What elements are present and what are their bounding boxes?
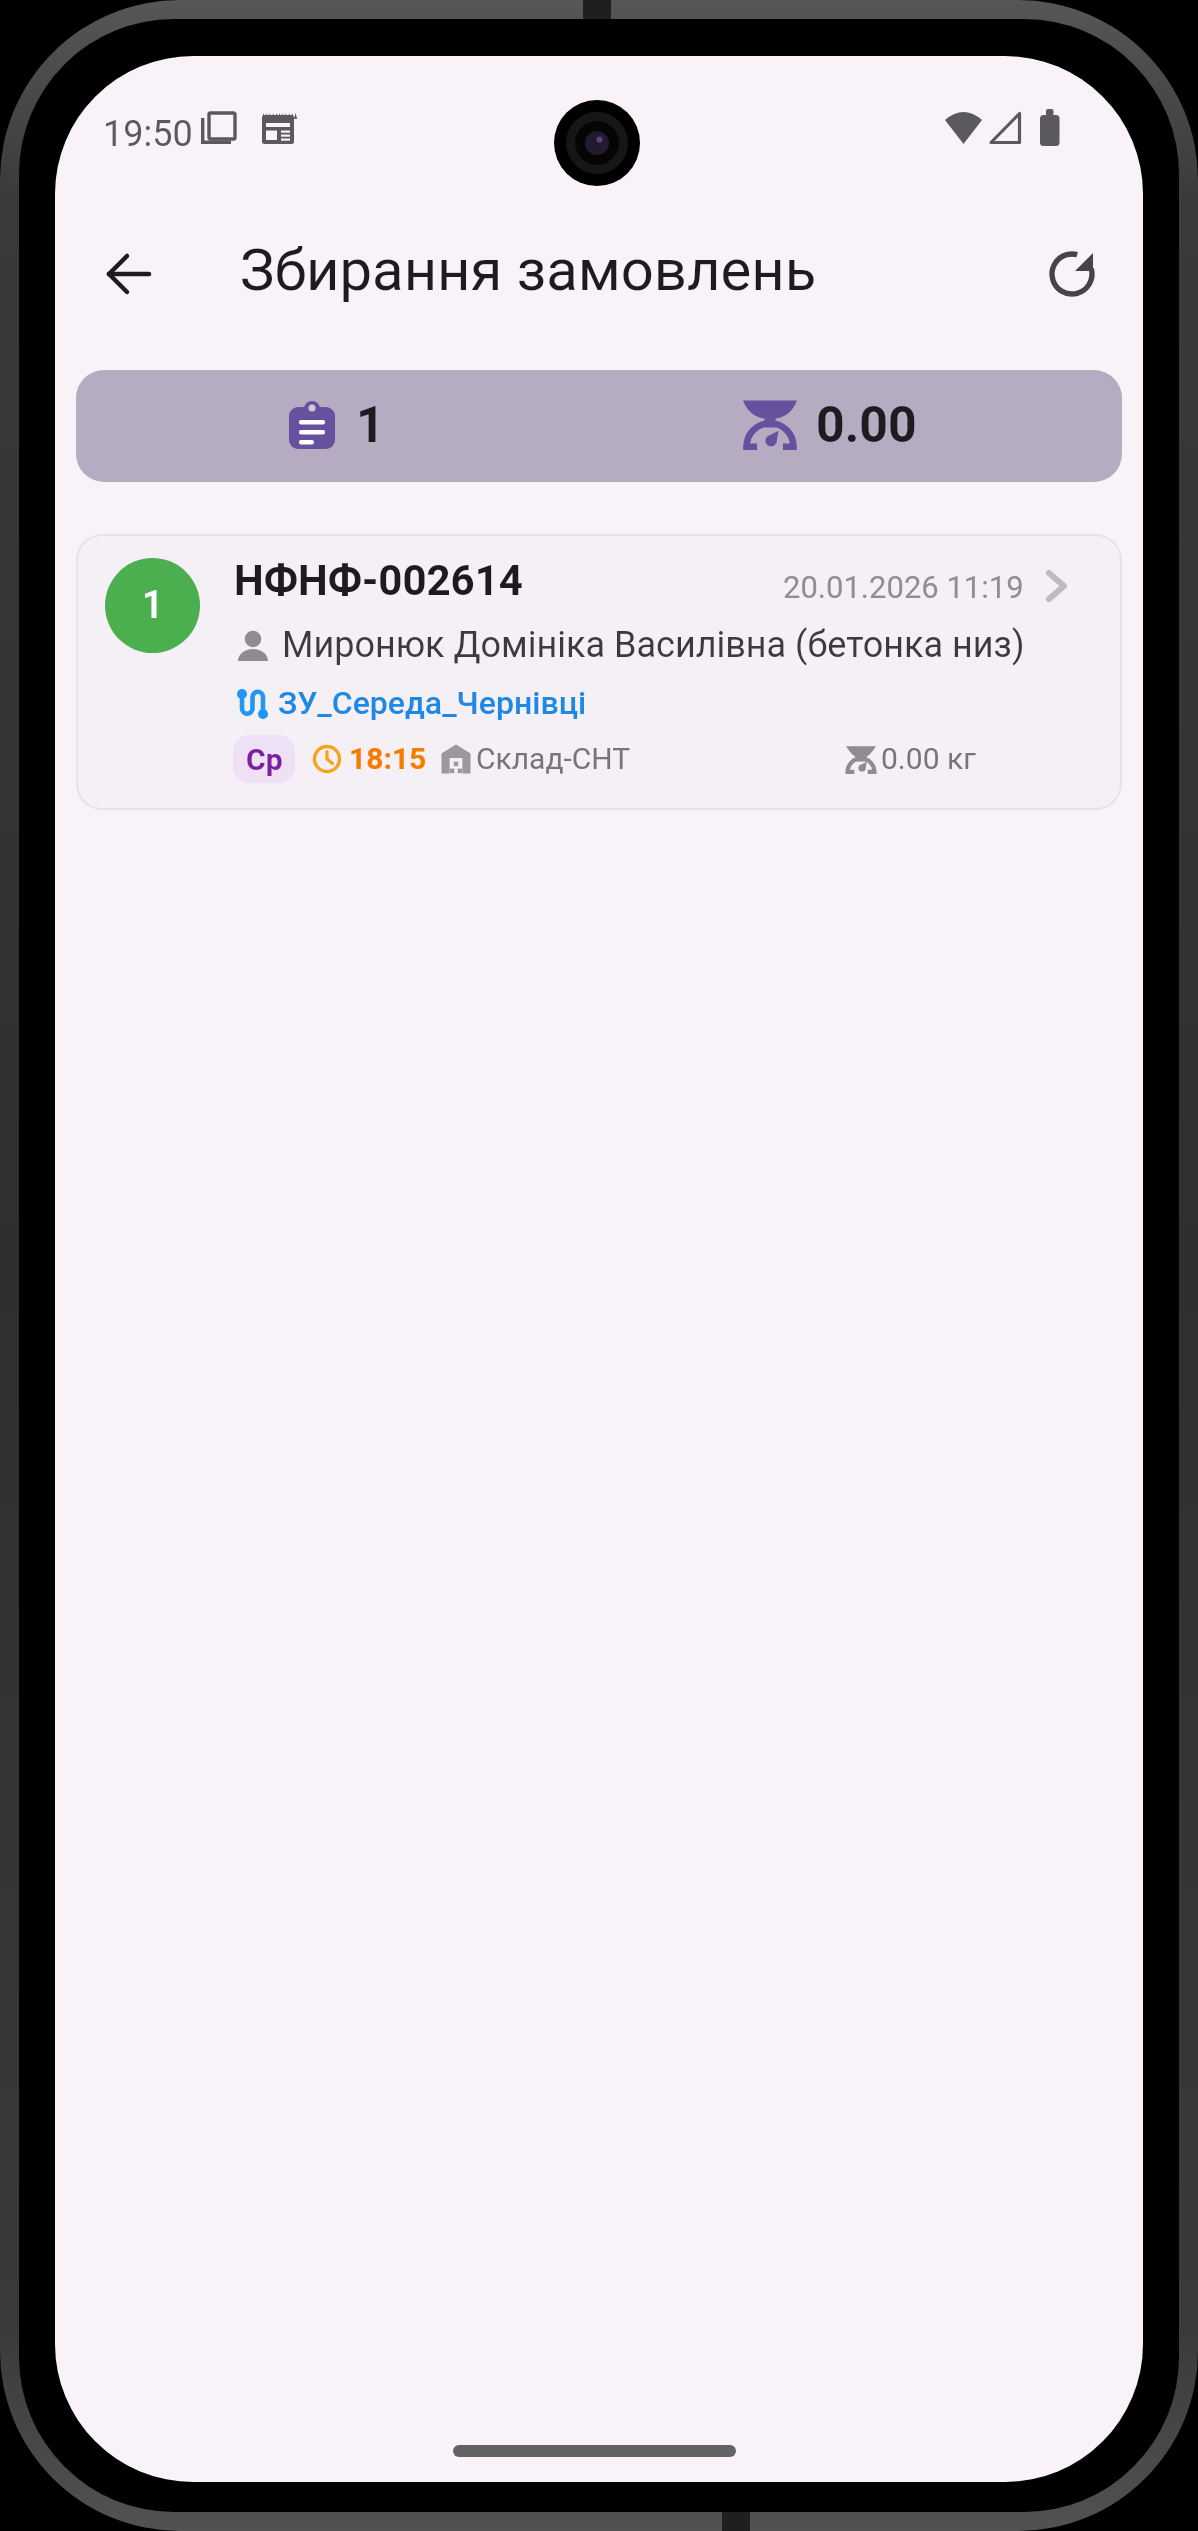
staticText: 0.00 кг [881,741,976,776]
button[interactable]: 1 [76,534,1122,810]
staticText: 20.01.2026 11:19 [783,569,1024,605]
staticText: Склад-СНТ [476,741,631,776]
button[interactable] [1028,230,1116,318]
staticText: 1 [142,583,164,628]
button[interactable]: 1 [76,370,1122,482]
button[interactable] [85,230,173,318]
staticText: 19:50 [103,113,193,155]
staticText: Збирання замовлень [240,236,817,304]
staticText: 0.00 [816,396,917,455]
staticText: НФНФ-002614 [234,556,523,605]
staticText: Миронюк Домініка Василівна (бетонка низ) [282,624,1025,666]
staticText: 1 [356,396,385,455]
staticText: Ср [246,742,283,777]
staticText: 18:15 [349,741,427,776]
staticText: ЗУ_Середа_Чернівці [278,684,587,722]
